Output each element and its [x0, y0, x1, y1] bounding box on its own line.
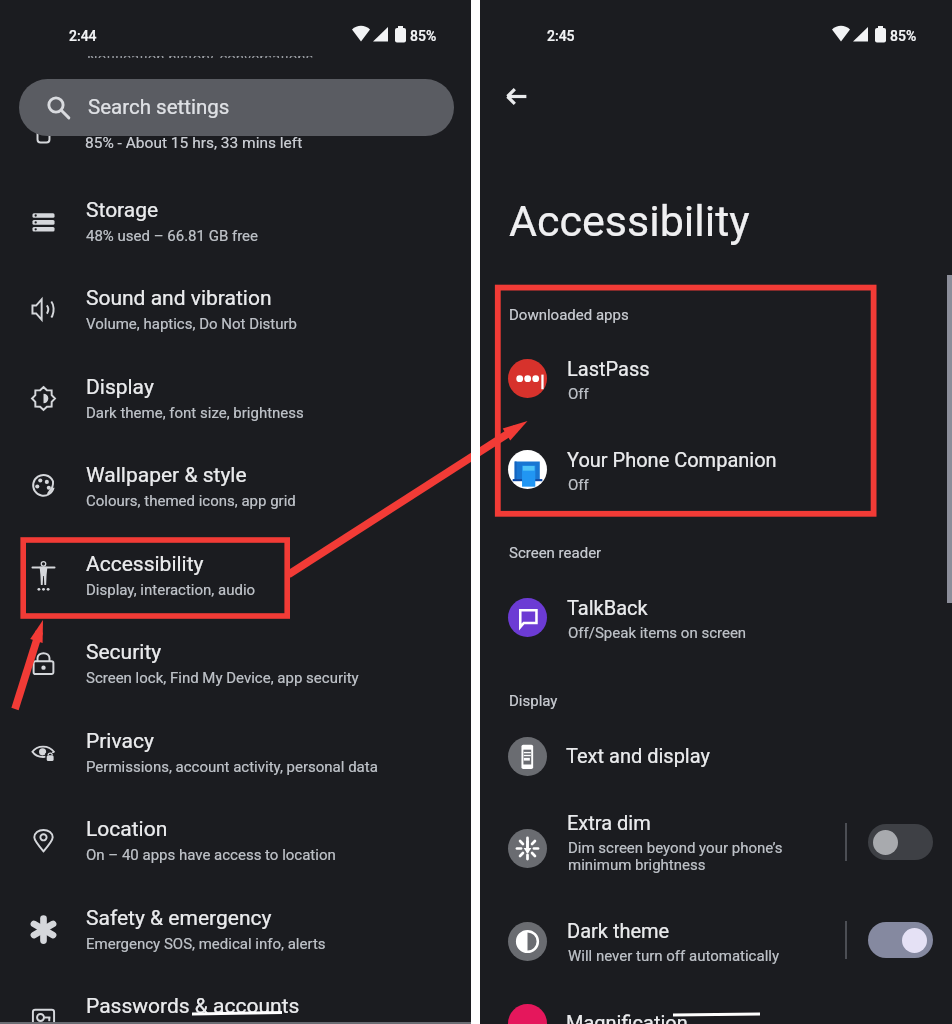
staticText: Dim screen beyond your phone’s minimum b…	[568, 839, 783, 873]
staticText: Will never turn off automatically	[568, 947, 780, 965]
staticText: 48% used – 66.81 GB free	[86, 227, 259, 245]
staticText: Downloaded apps	[509, 306, 629, 324]
button[interactable]: Storage	[0, 197, 471, 281]
button[interactable]: Display	[0, 374, 471, 458]
button[interactable]: Security	[0, 639, 471, 723]
staticText: Extra dim	[567, 811, 651, 834]
button[interactable]: Sound and vibration	[0, 285, 471, 369]
staticText: Notification history, conversations	[87, 56, 314, 58]
staticText: LastPass	[567, 357, 650, 380]
staticText: Your Phone Companion	[567, 448, 777, 471]
staticText: Magnification	[566, 1011, 688, 1024]
other: Search	[47, 96, 70, 119]
staticText: Screen reader	[509, 544, 602, 562]
staticText: 85% - About 15 hrs, 33 mins left	[85, 134, 303, 152]
staticText: 85%	[890, 28, 917, 44]
staticText: Off	[568, 385, 589, 403]
staticText: Accessibility	[86, 552, 204, 577]
button[interactable]: Dark theme toggle	[868, 922, 933, 958]
staticText: Display, interaction, audio	[86, 581, 256, 599]
staticText: On – 40 apps have access to location	[86, 846, 336, 864]
button[interactable]: LastPass	[480, 357, 952, 429]
staticText: Text and display	[566, 744, 710, 767]
button[interactable]: Location	[0, 816, 471, 900]
staticText: Sound and vibration	[86, 286, 272, 311]
button[interactable]: Extra dim toggle	[868, 824, 933, 860]
staticText: Search settings	[88, 95, 230, 119]
staticText: Colours, themed icons, app grid	[86, 492, 296, 510]
staticText: Accessibility	[509, 196, 750, 246]
staticText: Wallpaper & style	[86, 463, 247, 488]
button[interactable]: Your Phone Companion	[480, 448, 952, 520]
button[interactable]: Privacy	[0, 728, 471, 812]
button[interactable]: Dark theme	[480, 919, 952, 991]
staticText: Permissions, account activity, personal …	[86, 758, 378, 776]
button[interactable]: Wallpaper & style	[0, 462, 471, 546]
button[interactable]: Magnification	[480, 1003, 952, 1024]
staticText: Privacy	[86, 729, 154, 754]
staticText: Safety & emergency	[86, 906, 272, 931]
button[interactable]: Safety & emergency	[0, 905, 471, 989]
staticText: Screen lock, Find My Device, app securit…	[86, 669, 359, 687]
button[interactable]: Back	[488, 68, 544, 124]
staticText: Passwords & accounts	[86, 994, 300, 1019]
staticText: Off	[568, 476, 589, 494]
staticText: 2:45	[547, 28, 575, 44]
button[interactable]: Text and display	[480, 736, 952, 790]
staticText: TalkBack	[567, 596, 648, 619]
staticText: Dark theme, font size, brightness	[86, 404, 304, 422]
button[interactable]: Accessibility	[0, 551, 471, 635]
button[interactable]: Search	[19, 79, 454, 136]
staticText: Emergency SOS, medical info, alerts	[86, 935, 326, 953]
button[interactable]: Passwords & accounts	[0, 993, 471, 1024]
staticText: Dark theme	[567, 919, 670, 942]
staticText: Display	[86, 375, 154, 400]
staticText: Display	[509, 692, 558, 710]
staticText: Security	[86, 640, 162, 665]
staticText: Volume, haptics, Do Not Disturb	[86, 315, 298, 333]
staticText: Storage	[86, 198, 159, 223]
staticText: Off/Speak items on screen	[568, 624, 747, 642]
button[interactable]: Extra dim	[480, 811, 952, 883]
staticText: Location	[86, 817, 168, 842]
staticText: 85%	[410, 28, 437, 44]
button[interactable]: TalkBack	[480, 596, 952, 668]
staticText: 2:44	[69, 28, 97, 44]
